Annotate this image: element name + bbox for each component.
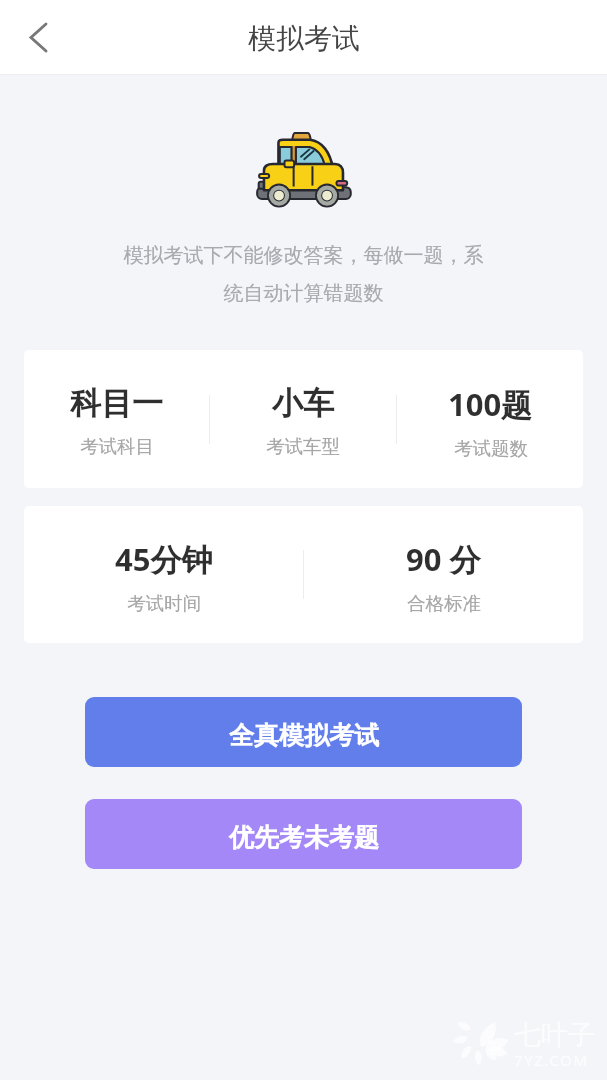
staticText: 90 分 <box>406 538 481 580</box>
button[interactable]: Back <box>9 8 67 66</box>
staticText: 科目一 <box>70 384 163 423</box>
staticText: 全真模拟考试 <box>229 720 379 751</box>
staticText: 合格标准 <box>407 592 481 615</box>
staticText: 优先考未考题 <box>229 822 379 853</box>
staticText: 45分钟 <box>115 538 213 580</box>
button[interactable]: 全真模拟考试 <box>85 697 522 767</box>
staticText: 考试题数 <box>454 437 528 460</box>
staticText: 模拟考试下不能修改答案，每做一题，系 统自动计算错题数 <box>0 243 607 306</box>
button[interactable]: 优先考未考题 <box>85 799 522 869</box>
staticText: 考试科目 <box>80 435 154 458</box>
staticText: 小车 <box>272 384 334 423</box>
staticText: 考试车型 <box>266 435 340 458</box>
staticText: 模拟考试 <box>248 21 360 56</box>
staticText: 100题 <box>448 383 533 425</box>
staticText: 考试时间 <box>127 592 201 615</box>
